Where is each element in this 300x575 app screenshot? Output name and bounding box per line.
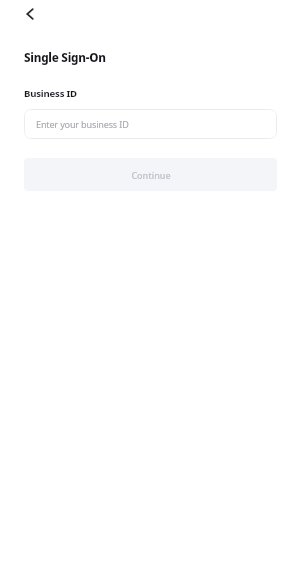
button[interactable]: Continue: [24, 158, 277, 191]
button[interactable]: Back: [16, 0, 44, 28]
staticText: Single Sign-On: [24, 49, 106, 65]
button[interactable]: Enter your business ID: [24, 109, 277, 139]
staticText: Enter your business ID: [36, 118, 129, 130]
staticText: Business ID: [24, 87, 77, 100]
staticText: Continue: [131, 169, 171, 181]
